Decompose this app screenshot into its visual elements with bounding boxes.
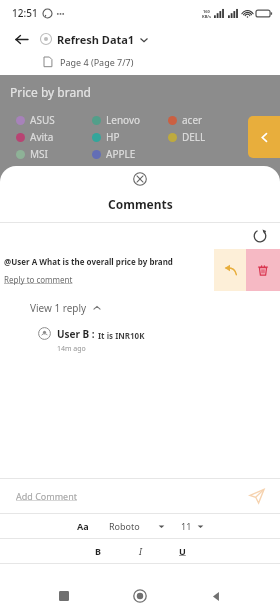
button[interactable]: Close (129, 168, 151, 190)
staticText: Comments (108, 196, 173, 212)
button[interactable]: U (161, 545, 203, 557)
staticText: B (95, 545, 101, 557)
staticText: DELL (182, 130, 206, 144)
button[interactable]: 11 (181, 520, 204, 532)
button[interactable]: Recents (44, 576, 84, 616)
button[interactable]: B (77, 545, 119, 557)
staticText: Roboto (109, 520, 140, 532)
button[interactable]: Roboto (109, 520, 165, 532)
staticText: @User A What is the overall price by bra… (4, 256, 173, 267)
staticText: acer (182, 113, 203, 127)
button[interactable]: View 1 reply (30, 301, 101, 315)
button[interactable]: Previous (248, 116, 280, 158)
staticText: U (179, 545, 186, 557)
staticText: Price by brand (10, 84, 91, 100)
button[interactable]: @User A What is the overall price by bra… (0, 249, 214, 291)
staticText: Refresh Data1 (57, 32, 135, 47)
staticText: 12:51 (12, 6, 38, 20)
button[interactable]: I (119, 545, 161, 557)
staticText: Page 4 (Page 7/7) (60, 56, 134, 68)
staticText: 14m ago (57, 344, 86, 354)
button[interactable]: Add Comment (16, 490, 78, 502)
button[interactable]: Back (10, 28, 32, 50)
staticText: KB/s (202, 14, 211, 19)
staticText: Avita (30, 130, 54, 144)
staticText: 11 (181, 520, 192, 532)
button[interactable]: Back (196, 576, 236, 616)
staticText: APPLE (106, 147, 136, 161)
button[interactable]: Aa (77, 520, 89, 532)
button[interactable]: Home (120, 576, 160, 616)
button[interactable]: Delete (246, 249, 280, 291)
button[interactable]: Reply to comment (4, 274, 73, 285)
staticText: 160 (203, 9, 210, 14)
staticText: Lenovo (106, 113, 141, 127)
button[interactable]: Refresh Data1 (57, 32, 148, 47)
staticText: MSI (30, 147, 48, 161)
staticText: ASUS (30, 113, 55, 127)
staticText: User B : (57, 327, 95, 341)
button[interactable]: Reply (214, 249, 246, 291)
staticText: View 1 reply (30, 301, 87, 315)
staticText: I (139, 545, 142, 557)
staticText: HP (106, 130, 120, 144)
staticText: It is INR10K (98, 330, 145, 341)
button[interactable]: Send (246, 485, 268, 507)
button[interactable]: Refresh (250, 226, 270, 246)
